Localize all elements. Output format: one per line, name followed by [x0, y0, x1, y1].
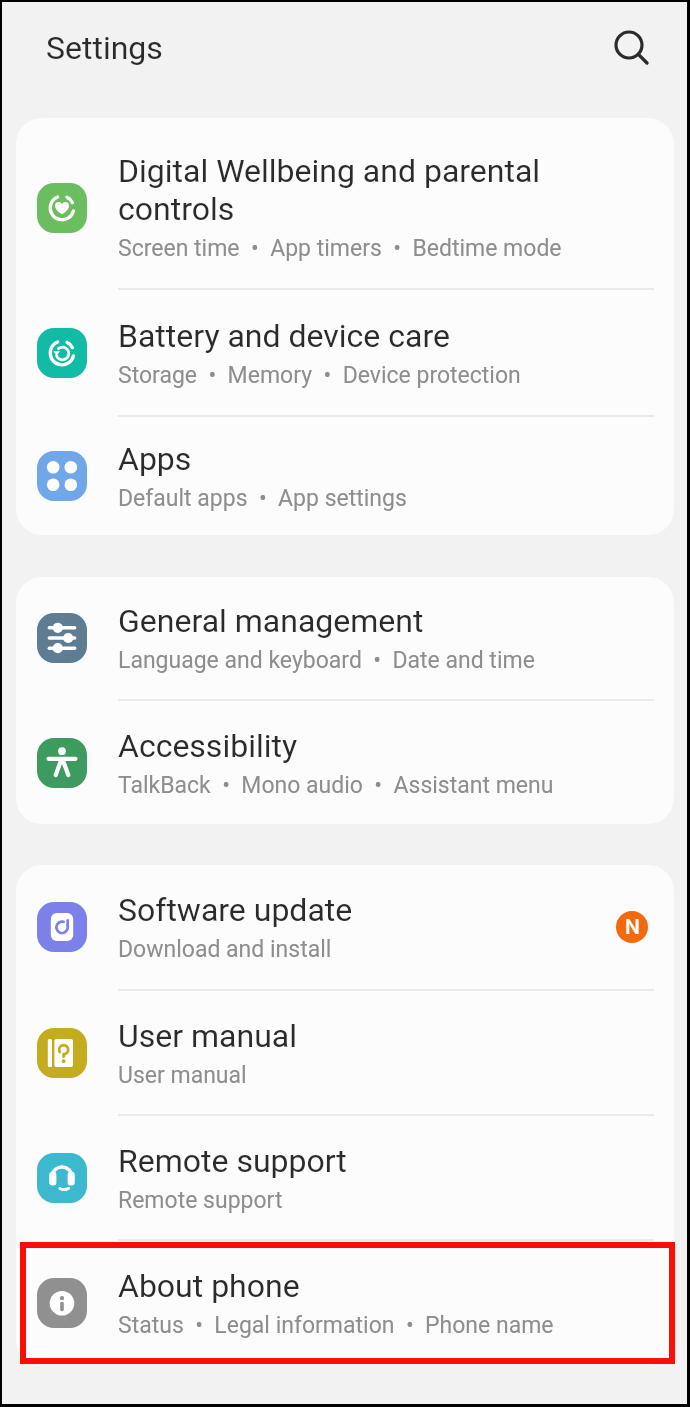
staticText: General management	[118, 602, 424, 640]
button[interactable]: About phone	[16, 1241, 674, 1365]
button[interactable]: Battery and device care	[16, 290, 674, 415]
button[interactable]: User manual	[16, 991, 674, 1114]
staticText: User manual	[118, 1062, 247, 1089]
button[interactable]: Software update	[16, 865, 674, 989]
staticText: N	[625, 915, 640, 940]
button[interactable]: General management	[16, 577, 674, 699]
staticText: Download and install	[118, 936, 332, 963]
staticText: Digital Wellbeing and parental controls	[118, 152, 541, 228]
staticText: Accessibility	[118, 727, 298, 765]
button[interactable]	[605, 20, 655, 70]
staticText: Settings	[46, 29, 163, 67]
staticText: Remote support	[118, 1187, 283, 1214]
staticText: Language and keyboard • Date and time	[118, 647, 535, 674]
button[interactable]: Digital Wellbeing and parental controls	[16, 118, 674, 288]
staticText: Default apps • App settings	[118, 485, 407, 512]
staticText: Battery and device care	[118, 317, 450, 355]
staticText: Status • Legal information • Phone name	[118, 1312, 554, 1339]
button[interactable]: Accessibility	[16, 701, 674, 824]
staticText: Remote support	[118, 1142, 347, 1180]
staticText: Software update	[118, 891, 353, 929]
staticText: About phone	[118, 1267, 300, 1305]
button[interactable]: Remote support	[16, 1116, 674, 1239]
staticText: Storage • Memory • Device protection	[118, 362, 521, 389]
staticText: User manual	[118, 1017, 297, 1055]
staticText: Screen time • App timers • Bedtime mode	[118, 235, 562, 262]
staticText: TalkBack • Mono audio • Assistant menu	[118, 772, 554, 799]
staticText: Apps	[118, 440, 192, 478]
button[interactable]: Apps	[16, 417, 674, 535]
